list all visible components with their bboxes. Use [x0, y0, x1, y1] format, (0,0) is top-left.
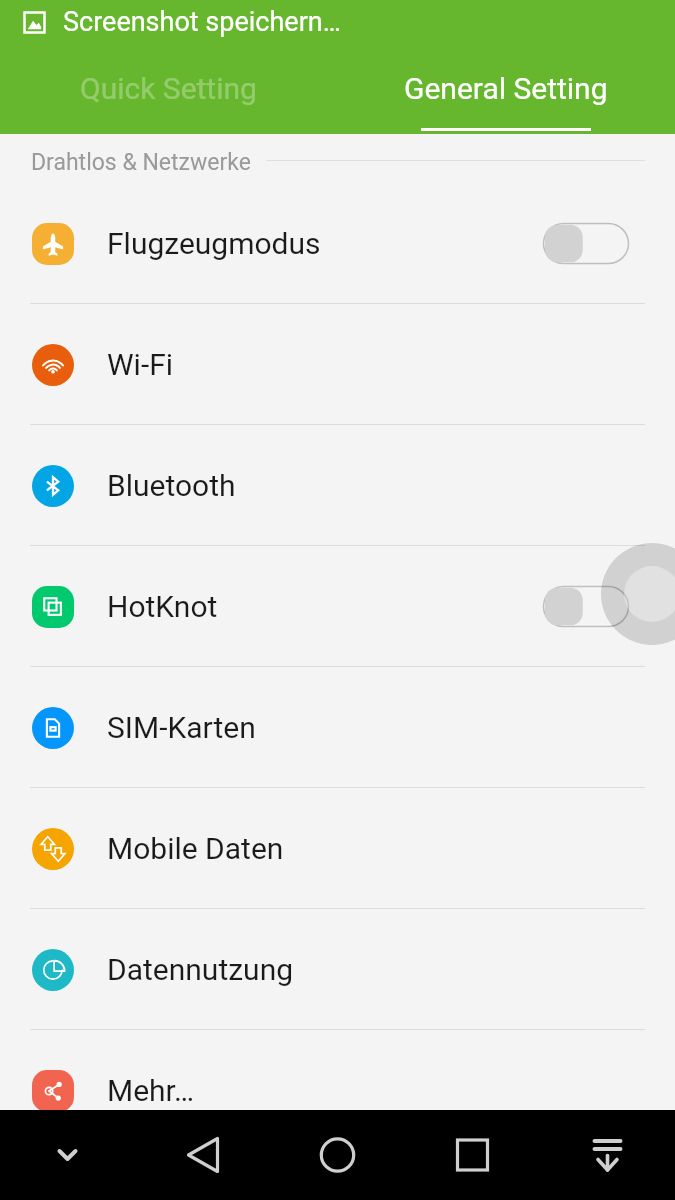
button[interactable]: Notifications [540, 1110, 675, 1200]
staticText: Bluetooth [107, 468, 236, 503]
staticText: Drahtlos & Netzwerke [31, 149, 251, 176]
staticText: Mobile Daten [107, 831, 284, 866]
button[interactable]: SIM-Karten [0, 667, 675, 788]
staticText: Datennutzung [107, 952, 294, 987]
staticText: General Setting [404, 71, 608, 106]
staticText: Quick Setting [80, 71, 257, 106]
staticText: Screenshot speichern… [63, 6, 341, 38]
staticText: HotKnot [107, 589, 218, 624]
button[interactable]: General Setting [337, 44, 675, 134]
button[interactable]: Back [135, 1110, 270, 1200]
button[interactable]: Datennutzung [0, 909, 675, 1030]
button[interactable]: Recent apps [405, 1110, 540, 1200]
button[interactable]: HotKnot [0, 546, 675, 667]
button[interactable]: Toggle [543, 586, 629, 627]
button[interactable]: Mehr… [0, 1030, 675, 1110]
button[interactable]: Flugzeugmodus [0, 183, 675, 304]
button[interactable]: Hide keyboard [0, 1110, 135, 1200]
staticText: Flugzeugmodus [107, 226, 321, 261]
button[interactable]: Mobile Daten [0, 788, 675, 909]
button[interactable]: Bluetooth [0, 425, 675, 546]
button[interactable]: Home [270, 1110, 405, 1200]
staticText: SIM-Karten [107, 710, 256, 745]
staticText: Wi-Fi [107, 347, 174, 382]
button[interactable]: Quick Setting [0, 44, 337, 134]
button[interactable]: Wi-Fi [0, 304, 675, 425]
staticText: Mehr… [107, 1073, 195, 1108]
button[interactable]: Toggle [543, 223, 629, 264]
